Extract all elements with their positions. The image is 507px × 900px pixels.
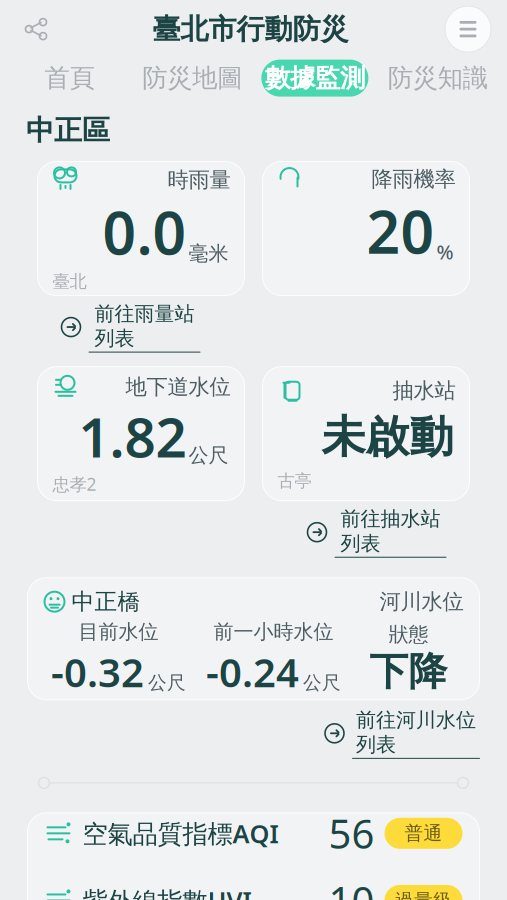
staticText: 56 <box>328 807 374 860</box>
staticText: 時雨量 <box>167 167 230 193</box>
staticText: % <box>436 238 453 265</box>
staticText: 普通 <box>404 822 442 845</box>
staticText: 1.82 <box>78 400 186 472</box>
staticText: 毫米 <box>188 241 228 266</box>
button[interactable]: 前往雨量站列表 <box>60 297 200 357</box>
staticText: 20 <box>366 192 434 270</box>
staticText: 數據監測 <box>265 62 365 94</box>
staticText: 忠孝2 <box>52 472 96 495</box>
staticText: 防災知識 <box>388 62 488 94</box>
button[interactable]: 防災知識 <box>388 60 488 97</box>
staticText: 公尺 <box>148 671 186 694</box>
staticText: 防災地圖 <box>142 62 242 94</box>
staticText: 空氣品質指標AQI <box>82 816 278 850</box>
button[interactable]: 首頁 <box>44 60 94 97</box>
staticText: 地下道水位 <box>125 374 230 400</box>
staticText: 古亭 <box>277 470 311 492</box>
staticText: 前一小時水位 <box>213 620 333 644</box>
button[interactable]: Share <box>14 7 58 51</box>
button[interactable]: 防災地圖 <box>142 60 242 97</box>
staticText: 未啟動 <box>321 410 453 464</box>
button[interactable]: 前往抽水站列表 <box>306 503 446 562</box>
staticText: 前往河川水位列表 <box>356 708 476 757</box>
staticText: 中正橋 <box>71 588 140 616</box>
staticText: 河川水位 <box>379 589 463 615</box>
staticText: 臺北 <box>52 271 86 292</box>
staticText: 前往雨量站列表 <box>94 301 194 351</box>
staticText: 公尺 <box>188 443 228 468</box>
staticText: 降雨機率 <box>371 166 455 192</box>
staticText: 目前水位 <box>78 620 158 644</box>
staticText: 0.0 <box>102 193 186 271</box>
staticText: 10 <box>328 874 374 900</box>
staticText: 紫外線指數UVI <box>82 884 251 900</box>
staticText: 下降 <box>369 648 447 695</box>
staticText: 過量級 <box>395 889 452 900</box>
staticText: 抽水站 <box>392 378 455 404</box>
staticText: 公尺 <box>303 671 341 694</box>
staticText: 狀態 <box>388 622 428 647</box>
staticText: 首頁 <box>44 62 94 94</box>
staticText: -0.24 <box>206 645 299 698</box>
staticText: 前往抽水站列表 <box>340 507 440 556</box>
button[interactable]: Menu <box>443 4 493 54</box>
button[interactable]: 數據監測 <box>261 60 368 97</box>
staticText: 臺北市行動防災 <box>152 12 348 46</box>
staticText: 中正區 <box>26 113 110 147</box>
staticText: -0.32 <box>51 645 144 698</box>
button[interactable]: 前往河川水位列表 <box>324 704 480 763</box>
